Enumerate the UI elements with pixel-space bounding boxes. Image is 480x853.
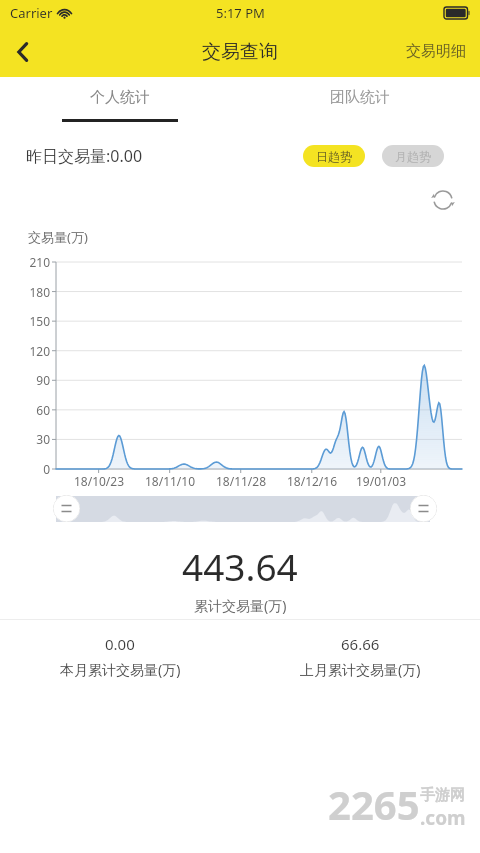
staticText: 19/01/03	[345, 473, 417, 489]
staticText: 本月累计交易量(万)	[60, 660, 181, 679]
button[interactable]: Range handle	[0, 487, 480, 529]
button[interactable]: 月趋势	[382, 145, 444, 167]
staticText: 120	[18, 343, 50, 359]
button[interactable]: Back	[0, 29, 46, 75]
staticText: .com	[420, 805, 466, 831]
staticText: 0.00	[105, 634, 135, 654]
button[interactable]: Range handle	[410, 495, 437, 522]
staticText: 个人统计	[90, 88, 150, 107]
staticText: 2265	[328, 777, 420, 831]
button[interactable]: Range handle	[53, 495, 80, 522]
staticText: 累计交易量(万)	[194, 596, 287, 615]
staticText: 5:17 PM	[216, 4, 265, 22]
button[interactable]: 个人统计	[0, 77, 240, 132]
staticText: 上月累计交易量(万)	[300, 660, 421, 679]
staticText: 18/12/16	[276, 473, 348, 489]
staticText: 日趋势	[316, 149, 352, 164]
button[interactable]: 交易明细	[400, 34, 472, 69]
staticText: 443.64	[182, 541, 298, 591]
staticText: 团队统计	[330, 88, 390, 107]
staticText: 30	[18, 431, 50, 447]
button[interactable]: 团队统计	[240, 77, 480, 132]
staticText: 手游网	[420, 786, 465, 805]
staticText: 月趋势	[395, 149, 431, 164]
staticText: 150	[18, 313, 50, 329]
button[interactable]: 66.66	[240, 620, 480, 694]
staticText: 18/10/23	[63, 473, 135, 489]
staticText: 交易明细	[406, 42, 466, 61]
staticText: 66.66	[341, 634, 380, 654]
staticText: 90	[18, 372, 50, 388]
staticText: 18/11/10	[134, 473, 206, 489]
button[interactable]: 日趋势	[303, 145, 365, 167]
button[interactable]: Refresh	[428, 185, 458, 215]
button[interactable]: 0.00	[0, 620, 240, 694]
staticText: 60	[18, 402, 50, 418]
staticText: 18/11/28	[205, 473, 277, 489]
staticText: 交易查询	[202, 40, 278, 64]
staticText: 交易量(万)	[28, 228, 88, 246]
staticText: 180	[18, 284, 50, 300]
staticText: 0	[18, 461, 50, 477]
staticText: Carrier	[10, 4, 53, 22]
staticText: 210	[18, 254, 50, 270]
staticText: 昨日交易量:0.00	[26, 145, 143, 167]
